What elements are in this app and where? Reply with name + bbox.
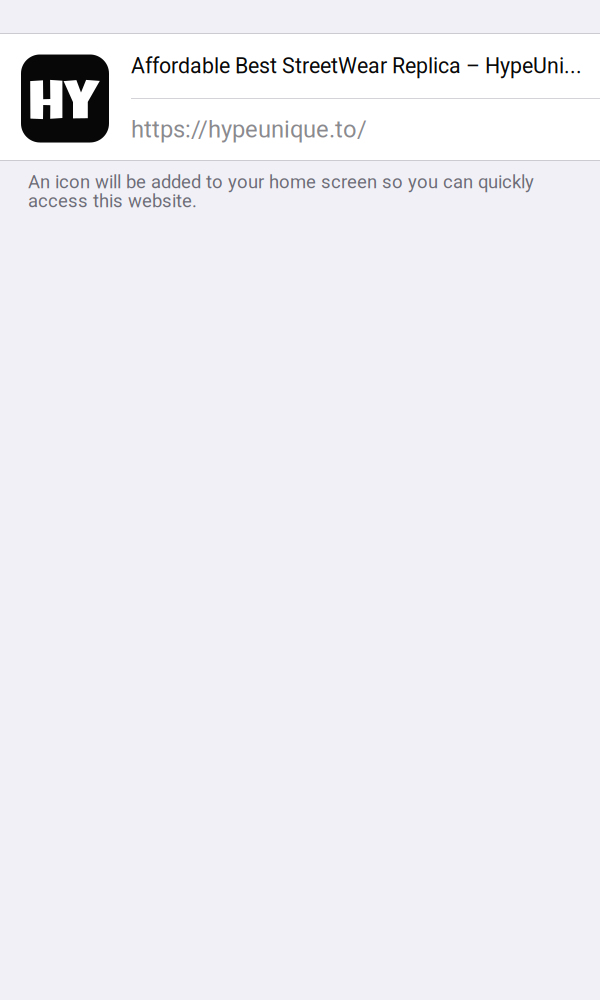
staticText: https://hypeunique.to/ <box>131 116 367 143</box>
button[interactable]: Affordable Best StreetWear Replica – Hyp… <box>131 34 600 98</box>
button[interactable]: Website icon <box>21 54 109 142</box>
button[interactable]: https://hypeunique.to/ <box>131 99 600 160</box>
staticText: Affordable Best StreetWear Replica – Hyp… <box>131 53 582 78</box>
staticText: An icon will be added to your home scree… <box>28 171 534 212</box>
